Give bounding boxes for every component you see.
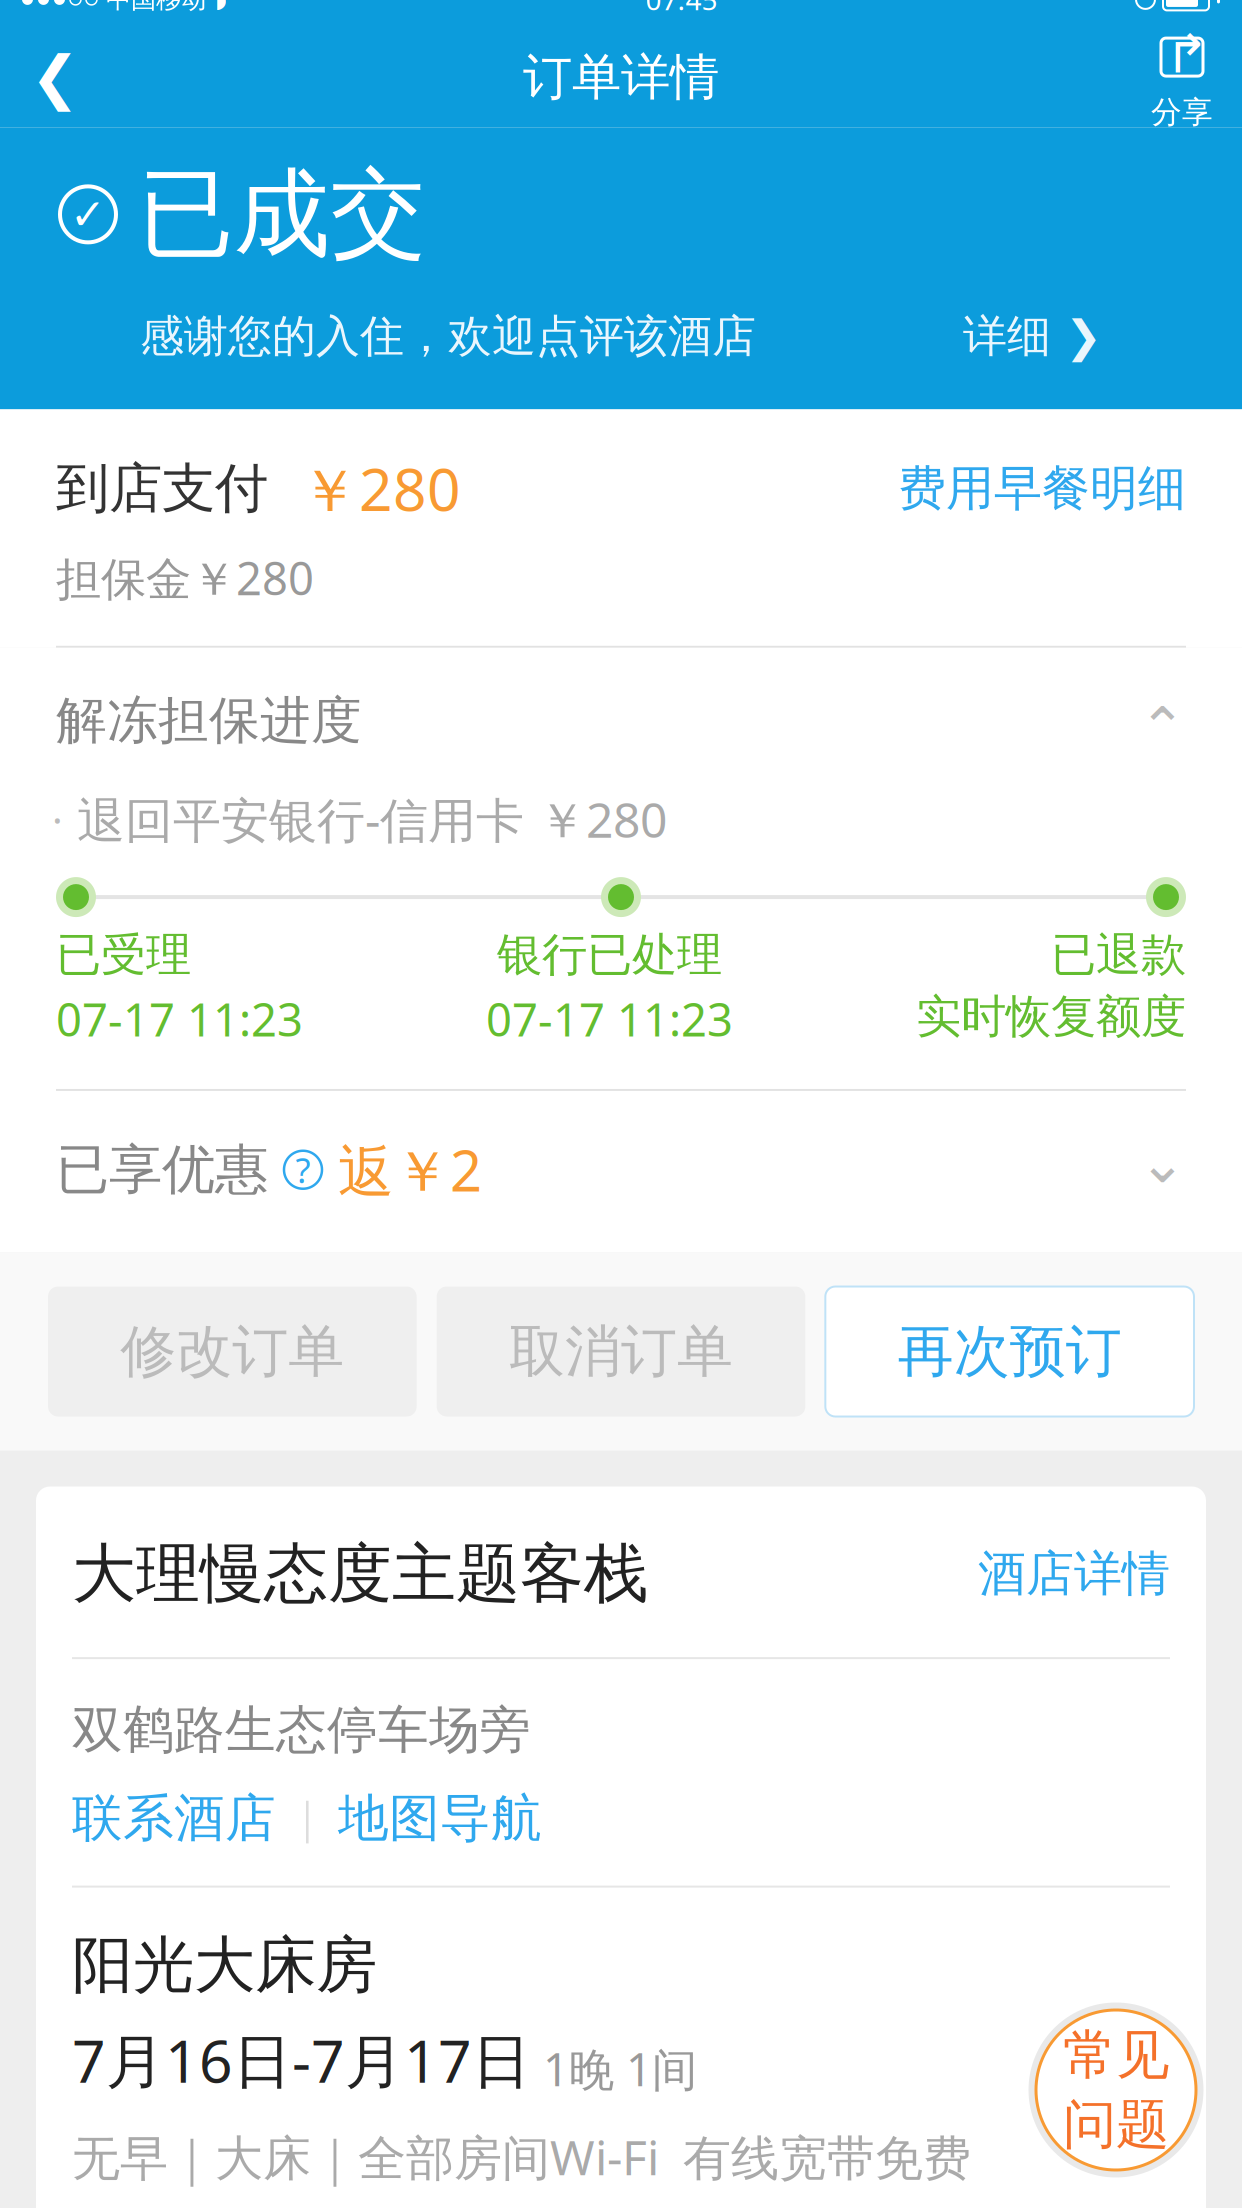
staticText: ⌄ bbox=[1139, 1131, 1186, 1195]
staticText: 已享优惠 bbox=[56, 1137, 268, 1202]
staticText: 07-17 11:23 bbox=[486, 989, 733, 1049]
staticText: 再次预订 bbox=[898, 1317, 1122, 1386]
staticText: 已受理 bbox=[56, 927, 191, 983]
button[interactable]: 费用早餐明细 bbox=[898, 459, 1186, 518]
staticText: 解冻担保进度 bbox=[56, 689, 362, 752]
staticText: 双鹤路生态停车场旁 bbox=[72, 1699, 531, 1761]
staticText: 返￥2 bbox=[338, 1133, 482, 1207]
staticText: ｜ bbox=[286, 1792, 328, 1845]
staticText: 已成交 bbox=[138, 155, 426, 273]
staticText: 地图导航 bbox=[338, 1787, 542, 1850]
button[interactable]: 分享 bbox=[1122, 27, 1242, 127]
staticText: 订单详情 bbox=[523, 47, 719, 108]
staticText: 联系酒店 bbox=[72, 1787, 276, 1850]
staticText: ￥280 bbox=[300, 449, 461, 528]
staticText: 已退款 bbox=[1051, 927, 1186, 983]
staticText: 7月16日-7月17日 bbox=[72, 2021, 531, 2099]
staticText: 修改订单 bbox=[120, 1317, 344, 1386]
button[interactable]: 取消订单 bbox=[437, 1286, 805, 1416]
staticText: ❮ bbox=[30, 44, 79, 111]
staticText: 07:45 bbox=[645, 0, 717, 18]
staticText: 大理慢态度主题客栈 bbox=[72, 1534, 648, 1613]
staticText: ? bbox=[295, 1147, 310, 1193]
button[interactable]: 修改订单 bbox=[48, 1286, 417, 1416]
staticText: ✓ bbox=[70, 190, 106, 239]
staticText: 取消订单 bbox=[509, 1317, 733, 1386]
staticText: 中国移动 bbox=[106, 0, 206, 15]
staticText: 分享 bbox=[1151, 93, 1213, 131]
staticText: ⌃ bbox=[1139, 696, 1186, 759]
staticText: 退回平安银行-信用卡 ￥280 bbox=[63, 787, 667, 851]
staticText: 阳光大床房 bbox=[72, 1928, 377, 2003]
button[interactable]: 地图导航 bbox=[338, 1787, 542, 1850]
button[interactable]: 返回 bbox=[0, 33, 110, 121]
button[interactable]: 再次预订 bbox=[825, 1286, 1194, 1416]
staticText: 感谢您的入住，欢迎点评该酒店 bbox=[140, 309, 756, 363]
staticText: 到店支付 bbox=[56, 456, 268, 521]
staticText: ◗ bbox=[215, 0, 227, 12]
staticText: 常见 bbox=[1063, 2022, 1169, 2088]
button[interactable]: 已享优惠 bbox=[0, 1091, 1242, 1253]
button[interactable]: 联系酒店 bbox=[72, 1787, 276, 1850]
staticText: 详细 bbox=[963, 309, 1051, 363]
staticText: 无早｜大床｜全部房间Wi-Fi 有线宽带免费 bbox=[72, 2125, 971, 2188]
button[interactable]: 解冻担保进度 bbox=[0, 648, 1242, 787]
staticText: 银行已处理 bbox=[497, 927, 722, 983]
staticText: 酒店详情 bbox=[978, 1544, 1170, 1603]
staticText: 实时恢复额度 bbox=[916, 989, 1186, 1044]
staticText: ↱ bbox=[1164, 24, 1209, 84]
staticText: 1晚 1间 bbox=[531, 2039, 697, 2099]
staticText: ❯ bbox=[1051, 311, 1102, 361]
staticText: 费用早餐明细 bbox=[898, 459, 1186, 518]
staticText: 问题 bbox=[1063, 2092, 1169, 2157]
staticText: 担保金￥280 bbox=[56, 548, 314, 608]
staticText: 07-17 11:23 bbox=[56, 989, 303, 1049]
button[interactable]: 大理慢态度主题客栈 bbox=[36, 1486, 1206, 1657]
staticText: · bbox=[52, 793, 63, 846]
button[interactable]: 常见问题 bbox=[1026, 2000, 1206, 2180]
button[interactable]: 感谢您的入住，欢迎点评该酒店 bbox=[0, 273, 1242, 409]
